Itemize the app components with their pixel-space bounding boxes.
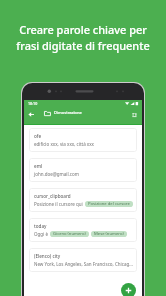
staticText: New York, Los Angeles, San Francisco, Ch…	[34, 261, 133, 267]
staticText: Dimostrazione	[54, 110, 82, 115]
button[interactable]: Back	[24, 109, 37, 122]
staticText: Posizione il cursore qui	[34, 201, 83, 207]
staticText: today	[34, 223, 47, 229]
button[interactable]: Add shortcut	[121, 283, 136, 296]
button[interactable]: cursor_clipboard	[29, 188, 137, 212]
button[interactable]: Sort	[129, 108, 140, 121]
staticText: (Elenco) city	[34, 253, 61, 259]
button[interactable]: today	[29, 218, 137, 242]
button[interactable]: ofe	[29, 128, 137, 152]
staticText: eml	[34, 163, 43, 169]
button[interactable]: eml	[29, 158, 137, 182]
staticText: Creare parole chiave per frasi digitate …	[0, 22, 166, 53]
staticText: Posizione del cursore	[88, 201, 130, 207]
staticText: john.doe@gmail.com	[34, 171, 79, 177]
staticText: Giorno (numero)	[53, 231, 86, 237]
staticText: 18:10	[28, 101, 38, 106]
staticText: Mese (numero)	[94, 231, 124, 237]
staticText: edificio xxx, via xxx, città xxx	[34, 141, 94, 147]
staticText: Oggi è	[34, 231, 48, 237]
staticText: cursor_clipboard	[34, 193, 71, 199]
staticText: ofe	[34, 133, 42, 139]
button[interactable]: (Elenco) city	[29, 248, 137, 272]
